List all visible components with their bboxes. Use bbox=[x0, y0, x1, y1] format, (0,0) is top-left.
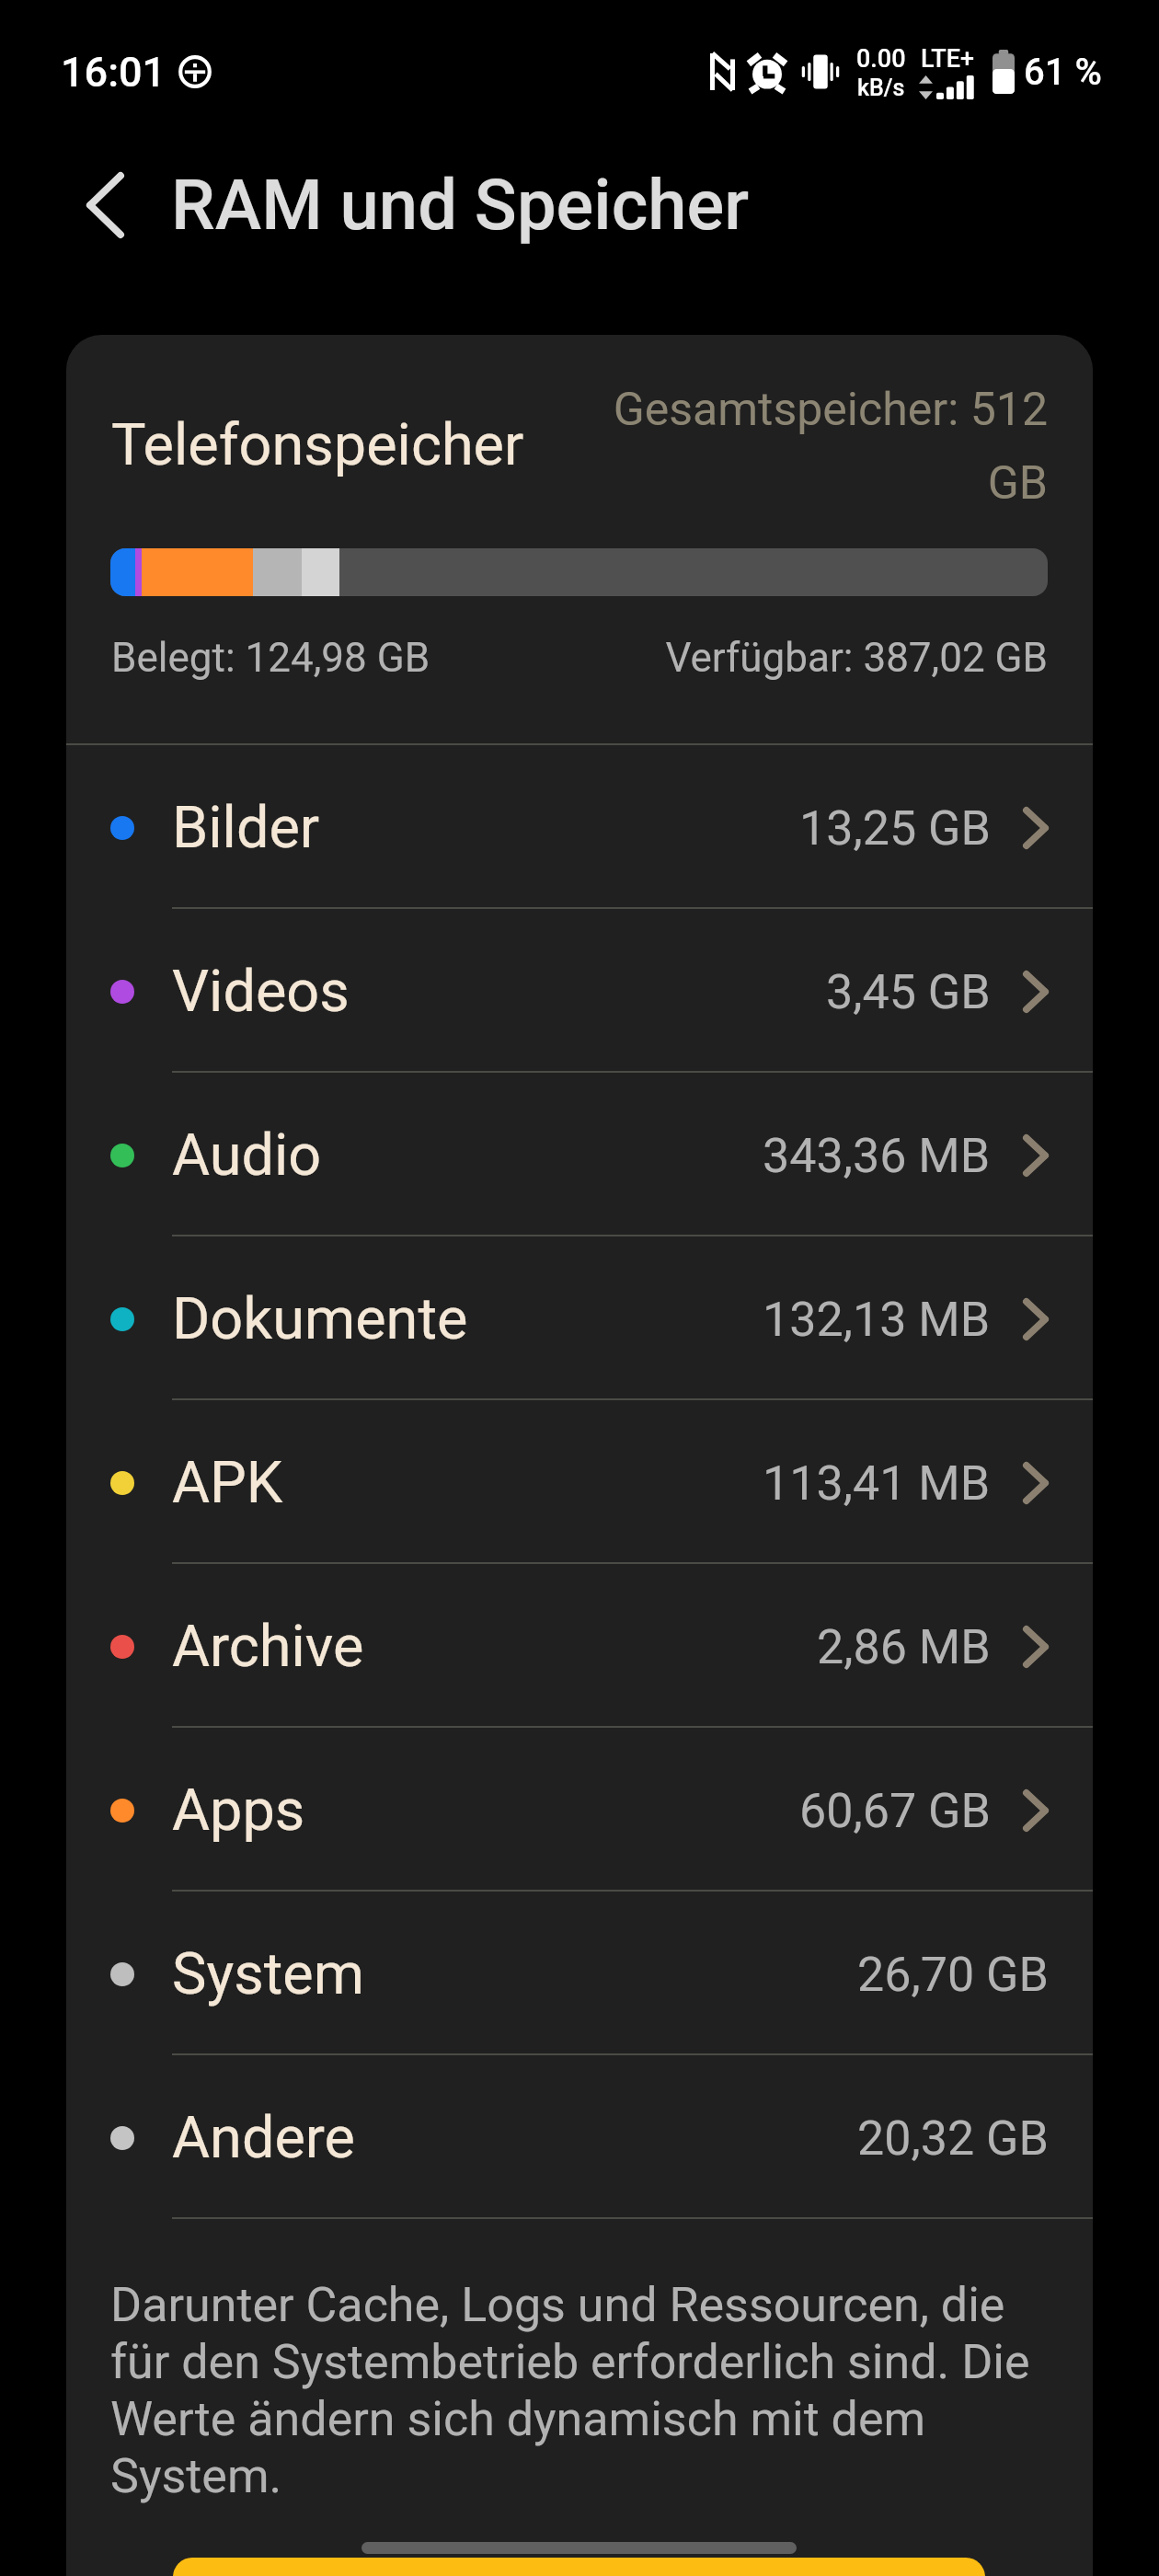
button[interactable]: System bbox=[66, 1892, 1093, 2053]
staticText: 343,36 MB bbox=[763, 1128, 991, 1184]
button[interactable]: Dokumente bbox=[66, 1236, 1093, 1398]
staticText: System bbox=[172, 1940, 364, 2008]
staticText: Telefonspeicher bbox=[111, 411, 524, 479]
staticText: 13,25 GB bbox=[799, 800, 991, 857]
staticText: Verfügbar: 387,02 GB bbox=[110, 634, 1048, 682]
staticText: Dokumente bbox=[172, 1285, 468, 1353]
staticText: Videos bbox=[172, 958, 350, 1026]
staticText: 20,32 GB bbox=[857, 2110, 1049, 2167]
button[interactable]: Speicher optimieren bbox=[173, 2558, 985, 2576]
staticText: 3,45 GB bbox=[826, 964, 991, 1020]
staticText: 132,13 MB bbox=[763, 1292, 991, 1348]
staticText: 60,67 GB bbox=[799, 1783, 991, 1839]
staticText: 26,70 GB bbox=[857, 1947, 1049, 2003]
button[interactable]: Bilder bbox=[66, 745, 1093, 907]
button[interactable]: APK bbox=[66, 1400, 1093, 1562]
staticText: 113,41 MB bbox=[763, 1455, 991, 1512]
button[interactable]: Back bbox=[53, 154, 156, 257]
button[interactable]: Archive bbox=[66, 1564, 1093, 1726]
staticText: 2,86 MB bbox=[817, 1619, 991, 1675]
button[interactable]: Videos bbox=[66, 909, 1093, 1071]
staticText: 0.00 bbox=[856, 44, 906, 74]
staticText: kB/s bbox=[857, 75, 905, 99]
staticText: APK bbox=[172, 1449, 283, 1517]
staticText: 16:01 bbox=[61, 48, 166, 97]
staticText: Archive bbox=[172, 1613, 364, 1681]
staticText: RAM und Speicher bbox=[171, 164, 750, 246]
staticText: Gesamtspeicher: 512 GB bbox=[554, 367, 1048, 514]
staticText: 61 % bbox=[1024, 51, 1102, 94]
button[interactable]: Apps bbox=[66, 1728, 1093, 1890]
staticText: Andere bbox=[172, 2104, 355, 2172]
staticText: Apps bbox=[172, 1777, 305, 1845]
staticText: Darunter Cache, Logs und Ressourcen, die… bbox=[110, 2276, 1039, 2504]
staticText: Bilder bbox=[172, 794, 320, 862]
staticText: Audio bbox=[172, 1121, 322, 1190]
staticText: Belegt: 124,98 GB bbox=[111, 634, 430, 682]
button[interactable]: Audio bbox=[66, 1073, 1093, 1235]
staticText: LTE+ bbox=[921, 44, 974, 74]
button[interactable]: Andere bbox=[66, 2055, 1093, 2217]
